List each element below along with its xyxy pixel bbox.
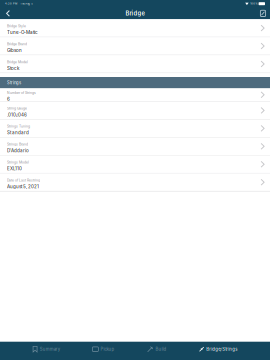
staticText: Bridge Brand [7, 42, 27, 46]
staticText: Bridge Style [7, 24, 26, 28]
button[interactable]: Strings Model [0, 156, 270, 173]
staticText: Strings Tuning [7, 124, 30, 128]
button[interactable]: Strings Tuning [0, 120, 270, 138]
button[interactable]: Bridge Style [0, 19, 270, 37]
button[interactable]: Bridge Brand [0, 37, 270, 55]
button[interactable]: Build [147, 342, 166, 357]
staticText: August 5, 2021 [7, 184, 39, 189]
staticText: D'Addario [7, 148, 29, 153]
button[interactable]: Number of Strings [0, 88, 270, 102]
staticText: Number of Strings [7, 91, 36, 95]
button[interactable]: Date of Last Restring [0, 173, 270, 191]
staticText: Thu Aug 5 [20, 2, 33, 5]
button[interactable]: String Gauge [0, 102, 270, 120]
staticText: .010/.046 [7, 112, 27, 117]
button[interactable]: Bridge Model [0, 55, 270, 73]
button[interactable]: Pickup [92, 342, 115, 357]
staticText: 4:20 PM [5, 2, 17, 5]
staticText: Pickup [101, 347, 115, 352]
button[interactable]: Edit [257, 7, 268, 19]
staticText: Strings [7, 80, 21, 85]
staticText: Strings Model [7, 160, 29, 164]
button[interactable]: Strings Brand [0, 138, 270, 156]
staticText: 6 [7, 96, 10, 102]
staticText: Standard [7, 130, 29, 135]
staticText: 100% [250, 2, 257, 5]
staticText: Tune-O-Matic [7, 30, 38, 35]
staticText: Date of Last Restring [7, 178, 40, 182]
staticText: Strings Brand [7, 142, 28, 146]
staticText: Gibson [7, 48, 22, 53]
staticText: String Gauge [7, 106, 27, 110]
staticText: Bridge Model [7, 60, 28, 64]
staticText: Bridge/Strings [206, 347, 237, 352]
staticText: Stock [7, 65, 19, 71]
staticText: Bridge [125, 10, 144, 17]
staticText: EXL110 [7, 166, 22, 171]
staticText: Build [155, 347, 166, 352]
button[interactable]: Back [1, 7, 15, 19]
button[interactable]: Summary [33, 342, 60, 357]
button[interactable]: Bridge/Strings [199, 342, 237, 357]
staticText: Summary [40, 347, 60, 352]
